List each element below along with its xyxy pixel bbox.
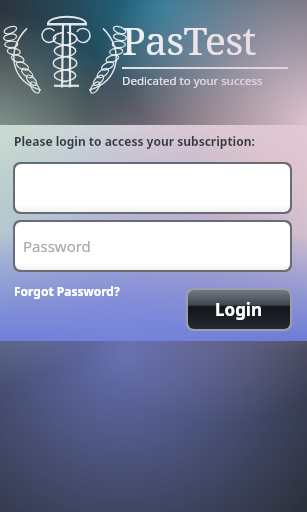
staticText: PasTest [122, 13, 256, 66]
staticText: Please login to access your subscription… [14, 133, 255, 149]
button[interactable]: Username [15, 164, 290, 212]
button[interactable]: Login [188, 290, 290, 329]
button[interactable]: Forgot Password? [12, 281, 122, 301]
button[interactable]: Password [15, 222, 290, 270]
other: PasTest emblem [17, 12, 113, 94]
staticText: Login [215, 298, 263, 321]
staticText: Dedicated to your success [122, 73, 263, 89]
staticText: Password [23, 236, 91, 256]
staticText: Forgot Password? [14, 283, 120, 299]
